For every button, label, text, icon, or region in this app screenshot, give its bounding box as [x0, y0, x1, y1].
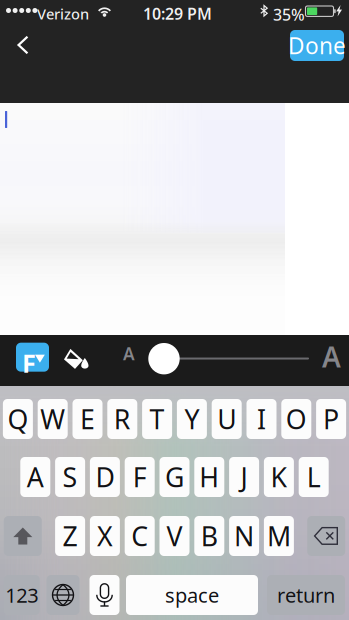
button[interactable]: Dictation [89, 575, 119, 615]
staticText: 35% [273, 4, 305, 25]
staticText: A [322, 338, 341, 375]
staticText: E [80, 401, 95, 437]
staticText: M [267, 518, 291, 554]
button[interactable]: V [159, 516, 189, 556]
staticText: A [123, 342, 135, 365]
button[interactable]: Text colour [63, 348, 89, 370]
button[interactable]: S [55, 457, 85, 497]
button[interactable]: K [264, 457, 294, 497]
staticText: space [165, 582, 219, 608]
button[interactable]: Done [290, 30, 344, 61]
staticText: K [270, 459, 287, 495]
staticText: B [201, 518, 218, 554]
staticText: A [27, 459, 44, 495]
button[interactable]: Next keyboard [46, 575, 79, 615]
button[interactable]: Y [177, 399, 207, 439]
button[interactable]: G [159, 457, 189, 497]
staticText: W [40, 401, 65, 437]
button[interactable]: I [246, 399, 276, 439]
staticText: R [114, 401, 131, 437]
button[interactable]: Shift [4, 516, 42, 556]
staticText: V [166, 518, 182, 554]
staticText: Y [184, 401, 199, 437]
button[interactable]: J [229, 457, 259, 497]
button[interactable]: Z [55, 516, 85, 556]
button[interactable]: Delete [307, 516, 345, 556]
staticText: I [257, 401, 266, 437]
button[interactable]: Back [2, 24, 44, 66]
button[interactable]: 123 [4, 575, 40, 615]
button[interactable]: N [229, 516, 259, 556]
staticText: D [95, 459, 114, 495]
button[interactable]: Q [3, 399, 33, 439]
staticText: J [241, 459, 248, 495]
button[interactable]: M [264, 516, 294, 556]
button[interactable]: L [299, 457, 329, 497]
button[interactable]: T [142, 399, 172, 439]
button[interactable]: U [212, 399, 242, 439]
button[interactable]: return [267, 575, 345, 615]
staticText: Done [288, 30, 346, 60]
staticText: F [133, 459, 147, 495]
staticText: Q [7, 401, 28, 437]
button[interactable]: X [90, 516, 120, 556]
staticText: X [97, 518, 113, 554]
staticText: C [131, 518, 148, 554]
staticText: S [63, 459, 78, 495]
staticText: G [165, 459, 184, 495]
staticText: U [217, 401, 236, 437]
button[interactable]: O [281, 399, 311, 439]
staticText: 123 [5, 582, 38, 608]
staticText: H [199, 459, 219, 495]
staticText: L [307, 459, 321, 495]
button[interactable]: A [20, 457, 50, 497]
staticText: Z [63, 518, 78, 554]
staticText: P [323, 401, 339, 437]
button[interactable]: C [125, 516, 155, 556]
button[interactable]: E [72, 399, 102, 439]
staticText: Verizon [37, 4, 89, 23]
button[interactable]: Font [16, 345, 49, 374]
staticText: T [150, 401, 165, 437]
button[interactable]: B [194, 516, 224, 556]
staticText: return [277, 582, 335, 608]
button[interactable]: H [194, 457, 224, 497]
button[interactable]: W [38, 399, 68, 439]
button[interactable]: P [316, 399, 346, 439]
staticText: O [286, 401, 307, 437]
staticText: 10:29 PM [143, 3, 212, 24]
button[interactable]: space [126, 575, 258, 615]
button[interactable]: R [107, 399, 137, 439]
button[interactable]: D [90, 457, 120, 497]
button[interactable]: F [125, 457, 155, 497]
staticText: F [22, 346, 36, 380]
staticText: N [234, 518, 254, 554]
